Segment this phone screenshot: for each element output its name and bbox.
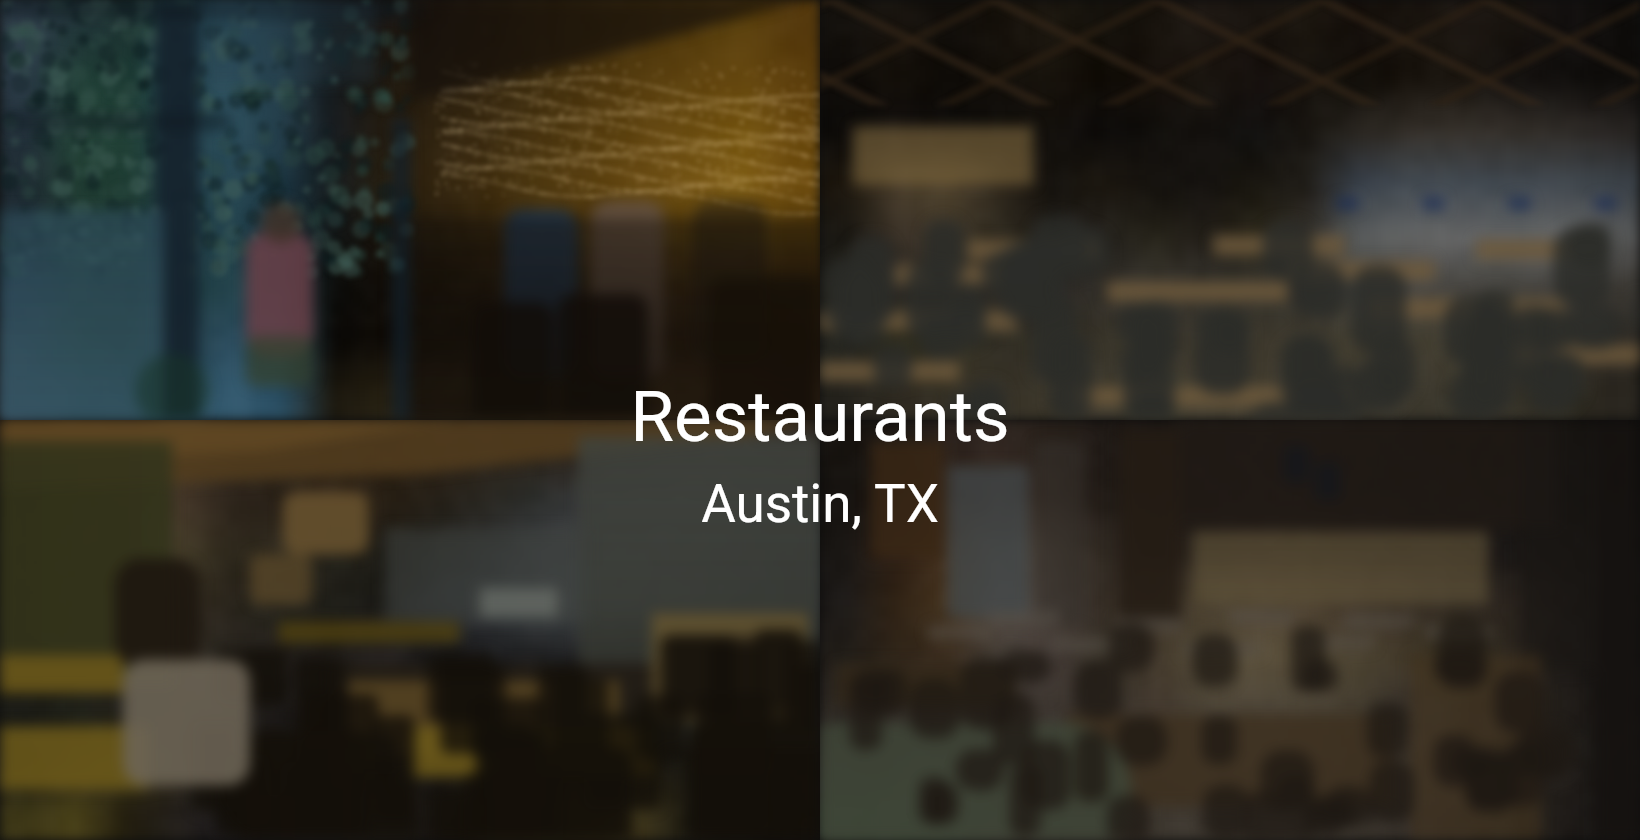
staticText: Austin, TX (701, 473, 939, 535)
button[interactable]: Photo of outdoor patio restaurant (0, 0, 820, 420)
button[interactable]: Photo of neighbourhood cafe (0, 420, 820, 840)
staticText: Restaurants (630, 375, 1010, 458)
button[interactable]: Photo of hotel dining room (820, 420, 1640, 840)
button[interactable]: Photo of modern dining hall (820, 0, 1640, 420)
